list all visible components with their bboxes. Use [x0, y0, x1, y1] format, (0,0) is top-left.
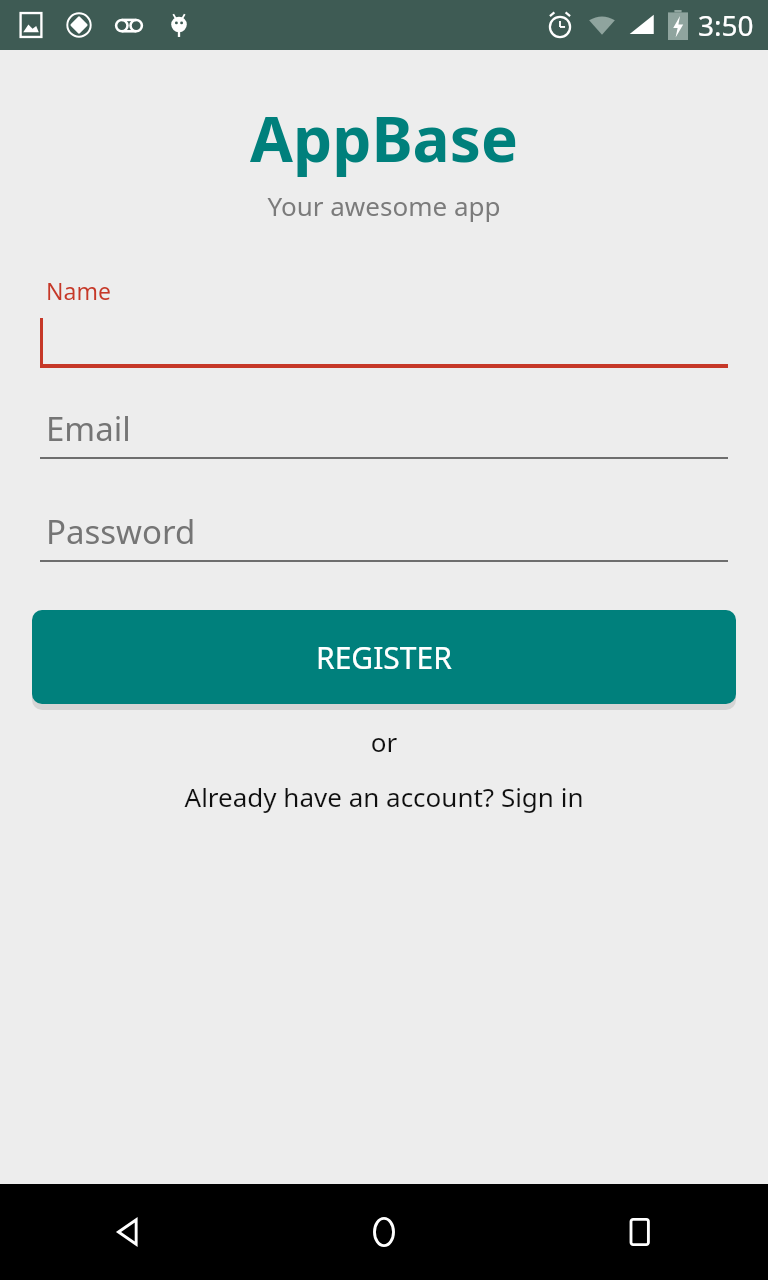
- button[interactable]: Password: [40, 509, 728, 562]
- button[interactable]: Name: [40, 275, 728, 368]
- button[interactable]: Recent apps: [512, 1184, 768, 1280]
- staticText: AppBase: [0, 96, 768, 180]
- button[interactable]: Back: [0, 1184, 256, 1280]
- staticText: REGISTER: [316, 637, 452, 678]
- button[interactable]: Home: [256, 1184, 512, 1280]
- staticText: Already have an account? Sign in: [0, 779, 768, 814]
- staticText: Your awesome app: [0, 188, 768, 223]
- button[interactable]: Already have an account? Sign in: [0, 775, 768, 818]
- button[interactable]: Email: [40, 406, 728, 459]
- button[interactable]: REGISTER: [32, 610, 736, 704]
- staticText: Password: [46, 509, 196, 554]
- staticText: Name: [46, 275, 111, 306]
- staticText: or: [0, 724, 768, 759]
- staticText: Email: [46, 406, 131, 451]
- staticText: 3:50: [698, 6, 754, 44]
